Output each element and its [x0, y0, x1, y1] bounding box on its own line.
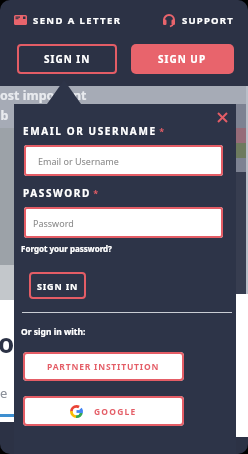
staticText: * — [91, 187, 99, 199]
staticText: SIGN UP — [158, 52, 207, 66]
button[interactable]: SIGN IN — [17, 44, 117, 74]
staticText: * — [157, 125, 165, 137]
button[interactable] — [213, 108, 231, 126]
staticText: ab — [0, 107, 9, 124]
staticText: Password — [33, 217, 74, 229]
button[interactable]: Password — [24, 207, 223, 238]
button[interactable]: PARTNER INSTITUTION — [23, 352, 184, 381]
button[interactable]: SIGN UP — [131, 44, 234, 74]
staticText: oc — [0, 325, 14, 359]
staticText: SIGN IN — [44, 52, 91, 66]
staticText: PARTNER INSTITUTION — [47, 361, 160, 373]
button[interactable]: SEND A LETTER — [14, 10, 122, 30]
button[interactable]: Email or Username — [24, 145, 223, 176]
staticText: ost important — [0, 87, 87, 104]
staticText: SEND A LETTER — [33, 14, 122, 27]
staticText: e — [0, 384, 8, 402]
staticText: GOOGLE — [94, 406, 137, 418]
button[interactable]: SIGN IN — [29, 272, 86, 299]
staticText: SUPPORT — [182, 14, 234, 27]
button[interactable]: GOOGLE — [23, 396, 184, 426]
staticText: Or sign in with: — [21, 326, 86, 338]
staticText: EMAIL OR USERNAME — [23, 124, 157, 138]
staticText: PASSWORD — [23, 186, 91, 200]
button[interactable]: SUPPORT — [163, 10, 234, 30]
button[interactable]: Forgot your password? — [21, 241, 112, 255]
staticText: Forgot your password? — [21, 243, 112, 254]
staticText: SIGN IN — [37, 280, 79, 292]
staticText: Email or Username — [38, 155, 119, 167]
